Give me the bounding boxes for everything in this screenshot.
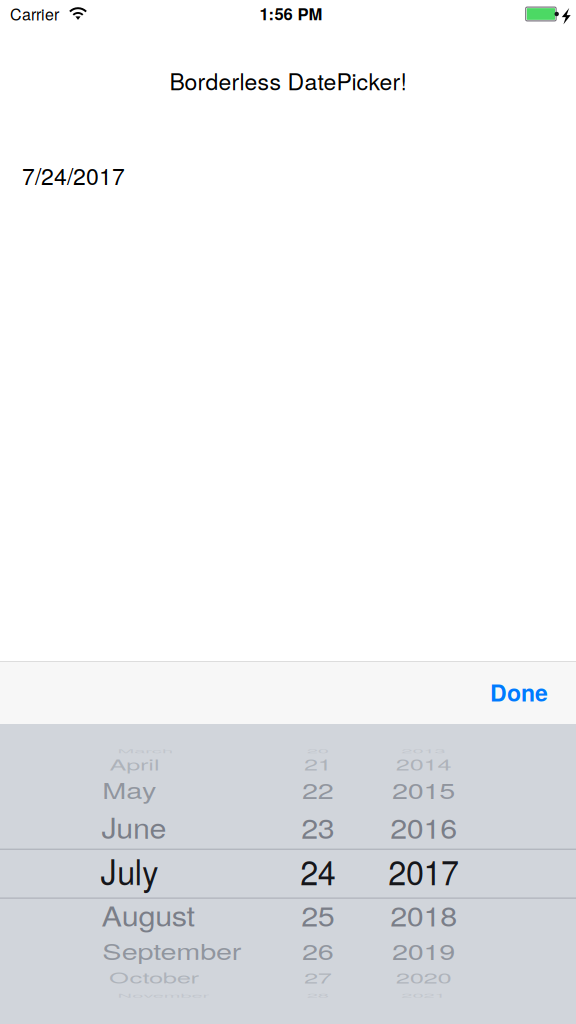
- staticText: April: [109, 739, 163, 779]
- staticText: 2020: [393, 952, 453, 992]
- staticText: Carrier: [10, 2, 59, 25]
- staticText: September: [102, 925, 252, 969]
- staticText: 2017: [385, 845, 461, 895]
- staticText: 21: [303, 739, 333, 779]
- staticText: 25: [300, 889, 336, 936]
- staticText: 24: [299, 845, 337, 895]
- staticText: May: [102, 763, 161, 808]
- staticText: October: [109, 952, 206, 992]
- staticText: August: [101, 889, 202, 936]
- staticText: 27: [303, 952, 333, 992]
- staticText: Borderless DatePicker!: [169, 64, 406, 97]
- staticText: 2016: [387, 801, 459, 848]
- staticText: 26: [301, 925, 335, 969]
- staticText: July: [100, 845, 163, 895]
- staticText: November: [117, 973, 216, 1004]
- staticText: June: [101, 801, 171, 848]
- button[interactable]: Done: [428, 661, 548, 723]
- staticText: 2014: [393, 739, 453, 779]
- staticText: 7/24/2017: [22, 159, 125, 191]
- staticText: Done: [490, 675, 548, 708]
- staticText: 2021: [399, 973, 447, 1004]
- staticText: 23: [300, 801, 336, 848]
- staticText: 2018: [387, 889, 459, 936]
- staticText: 1:56 PM: [259, 1, 322, 25]
- staticText: 28: [306, 973, 330, 1004]
- staticText: 2019: [389, 925, 457, 969]
- staticText: 22: [301, 763, 335, 808]
- staticText: 2015: [389, 763, 457, 808]
